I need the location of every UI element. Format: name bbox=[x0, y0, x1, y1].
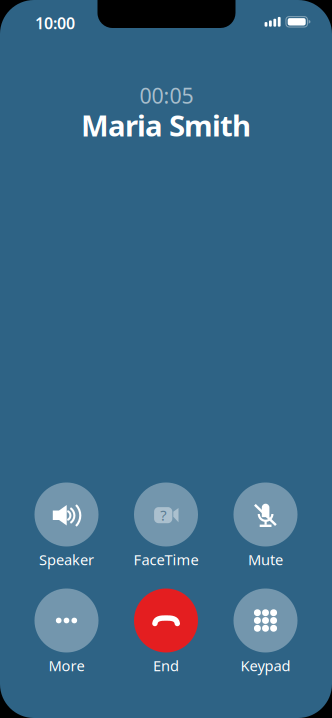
button[interactable]: Speaker bbox=[17, 482, 116, 567]
staticText: More bbox=[48, 656, 84, 675]
staticText: End bbox=[153, 656, 179, 675]
button[interactable]: End bbox=[116, 588, 215, 673]
button[interactable]: ? bbox=[116, 482, 215, 567]
staticText: FaceTime bbox=[133, 550, 198, 569]
staticText: Keypad bbox=[240, 656, 290, 675]
staticText: 00:05 bbox=[139, 81, 193, 110]
staticText: ? bbox=[160, 505, 166, 525]
button[interactable]: More bbox=[17, 588, 116, 673]
button[interactable]: Keypad bbox=[216, 588, 315, 673]
staticText: Mute bbox=[248, 550, 283, 569]
staticText: 10:00 bbox=[35, 12, 75, 34]
button[interactable]: Mute bbox=[216, 482, 315, 567]
staticText: Speaker bbox=[39, 550, 94, 569]
staticText: Maria Smith bbox=[81, 105, 251, 144]
